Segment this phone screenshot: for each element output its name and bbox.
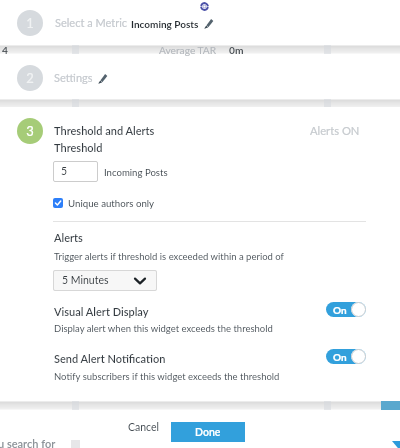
button[interactable]: Visual Alert Display <box>326 302 366 317</box>
button[interactable]: 1 <box>0 2 400 42</box>
button[interactable]: Cancel <box>124 417 164 437</box>
staticText: Settings <box>54 71 93 84</box>
staticText: On <box>333 351 347 363</box>
staticText: Cancel <box>128 421 160 434</box>
staticText: Select a Metric <box>55 16 128 29</box>
staticText: Alerts <box>54 231 83 244</box>
staticText: 3 <box>26 123 34 139</box>
button[interactable]: 5 Minutes <box>53 270 157 291</box>
staticText: Threshold <box>54 141 103 154</box>
button[interactable]: 2 <box>0 58 400 98</box>
staticText: Visual Alert Display <box>54 305 149 318</box>
staticText: Threshold and Alerts <box>54 124 155 137</box>
other: Refresh <box>200 2 209 11</box>
staticText: 1 <box>26 15 34 31</box>
staticText: Incoming Posts <box>104 167 168 179</box>
button[interactable]: Send Alert Notification <box>326 349 366 364</box>
other: Edit <box>97 73 108 84</box>
staticText: On <box>333 304 347 316</box>
staticText: Display alert when this widget exceeds t… <box>54 323 273 334</box>
staticText: 2 <box>26 70 34 86</box>
staticText: u search for <box>0 437 56 448</box>
staticText: Unique authors only <box>68 197 155 209</box>
staticText: 5 <box>61 165 68 178</box>
other: Edit <box>203 18 214 29</box>
staticText: 5 Minutes <box>62 274 109 287</box>
staticText: 0m <box>229 44 244 56</box>
button[interactable]: 5 <box>53 161 98 182</box>
button[interactable]: Unique authors only <box>53 196 155 209</box>
staticText: 4 <box>2 44 8 56</box>
staticText: Trigger alerts if threshold is exceeded … <box>54 251 284 262</box>
button[interactable]: Done <box>171 422 245 442</box>
staticText: Average TAR <box>159 44 217 56</box>
staticText: Incoming Posts <box>131 18 199 30</box>
staticText: Send Alert Notification <box>54 352 166 365</box>
staticText: Done <box>195 426 221 439</box>
staticText: Alerts ON <box>310 124 360 137</box>
staticText: Notify subscribers if this widget exceed… <box>54 371 280 382</box>
